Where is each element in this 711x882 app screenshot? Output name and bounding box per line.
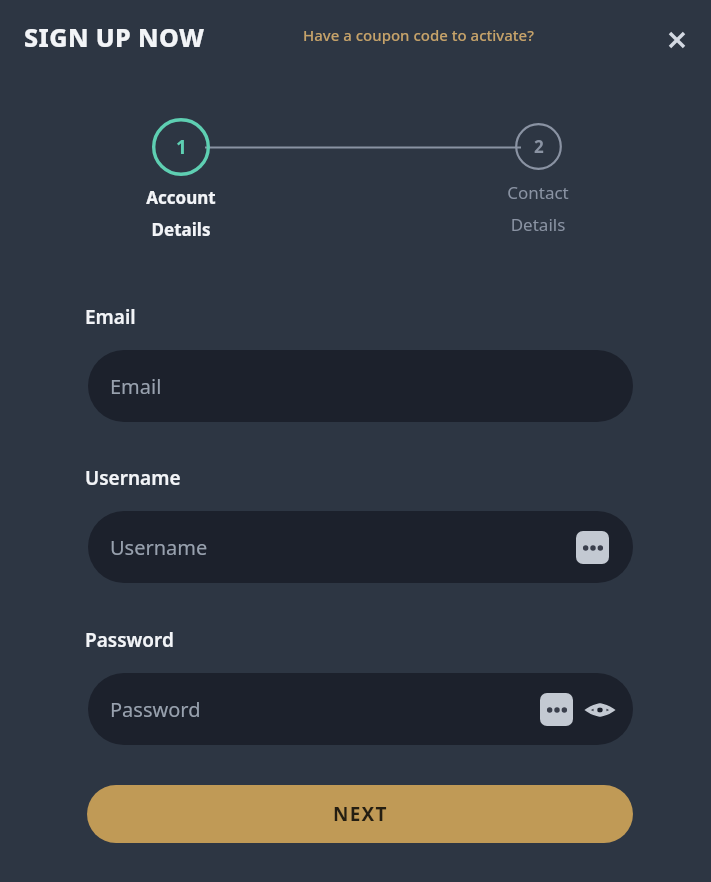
button[interactable]: Autofill suggestions bbox=[540, 693, 573, 726]
staticText: 1 bbox=[176, 134, 187, 160]
button[interactable]: NEXT bbox=[87, 785, 633, 843]
button[interactable]: Close bbox=[655, 18, 699, 62]
staticText: Username bbox=[85, 465, 181, 491]
staticText: Password bbox=[85, 627, 174, 653]
button[interactable]: Username bbox=[88, 511, 633, 583]
button[interactable]: Have a coupon code to activate? bbox=[303, 25, 534, 45]
staticText: 2 bbox=[534, 135, 544, 158]
button[interactable]: Password bbox=[88, 673, 633, 745]
button[interactable]: Email bbox=[88, 350, 633, 422]
staticText: Email bbox=[85, 304, 136, 330]
staticText: NEXT bbox=[333, 801, 388, 827]
button[interactable]: Show password bbox=[585, 695, 615, 725]
button[interactable]: 1 bbox=[118, 118, 244, 241]
staticText: Account Details bbox=[146, 186, 216, 241]
staticText: Email bbox=[110, 373, 162, 400]
staticText: Contact Details bbox=[507, 181, 569, 236]
button[interactable]: SIGN UP NOW bbox=[24, 20, 205, 54]
staticText: Password bbox=[110, 696, 201, 723]
button[interactable]: 2 bbox=[475, 123, 601, 236]
staticText: Username bbox=[110, 534, 208, 561]
button[interactable]: Autofill suggestions bbox=[576, 531, 609, 564]
